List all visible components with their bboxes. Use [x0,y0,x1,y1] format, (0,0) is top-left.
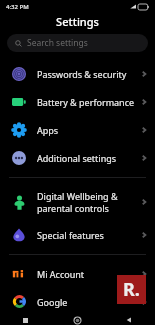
button[interactable]: Home [51,315,103,325]
button[interactable]: Google [0,288,155,315]
staticText: Passwords & security [37,68,127,80]
button[interactable]: Mi Account [0,260,155,288]
button[interactable]: Passwords & security [0,60,155,88]
staticText: Battery & performance [37,96,135,108]
button[interactable]: Back [103,315,155,325]
staticText: parental controls [37,202,109,214]
staticText: Google [37,296,68,308]
staticText: Special features [37,229,104,241]
staticText: Apps [37,124,59,136]
button[interactable]: Recent apps [0,315,51,325]
button[interactable]: Digital Wellbeing & [0,183,155,221]
button[interactable]: Additional settings [0,144,155,172]
staticText: Digital Wellbeing & [37,190,118,202]
staticText: Additional settings [37,152,117,164]
button[interactable]: Apps [0,116,155,144]
button[interactable]: Special features [0,221,155,249]
button[interactable]: Search settings [7,34,148,52]
staticText: Search settings [27,37,88,49]
staticText: Mi Account [37,268,85,280]
button[interactable]: Battery & performance [0,88,155,116]
staticText: Settings [56,14,99,29]
staticText: 4:32 PM [6,3,29,11]
staticText: R. [123,277,140,302]
